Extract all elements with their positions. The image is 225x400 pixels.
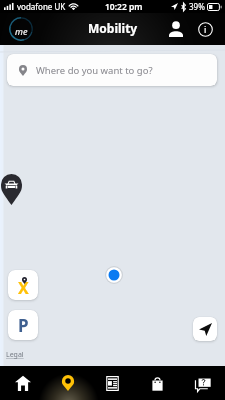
staticText: Mobility — [88, 20, 138, 36]
button[interactable]: Home — [0, 366, 45, 400]
staticText: Where do you want to go? — [36, 64, 153, 77]
button[interactable]: Information — [191, 13, 219, 45]
button[interactable]: me — [8, 16, 34, 42]
button[interactable]: Shop — [135, 366, 180, 400]
staticText: P — [18, 314, 29, 337]
button[interactable]: Legal — [6, 350, 24, 360]
button[interactable]: My location — [193, 317, 217, 341]
staticText: X — [18, 277, 29, 299]
button[interactable]: News — [90, 366, 135, 400]
staticText: 39% — [189, 1, 205, 12]
staticText: me — [15, 25, 28, 37]
staticText: i — [204, 23, 207, 35]
button[interactable]: Where do you want to go? — [7, 54, 217, 86]
button[interactable]: Account — [162, 13, 190, 45]
staticText: vodafone UK — [17, 1, 66, 12]
button[interactable]: Taxi — [8, 270, 38, 300]
staticText: 10:22 pm — [105, 1, 143, 13]
button[interactable]: Map — [45, 366, 90, 400]
button[interactable]: Parking — [8, 310, 38, 340]
button[interactable]: Help — [180, 366, 225, 400]
